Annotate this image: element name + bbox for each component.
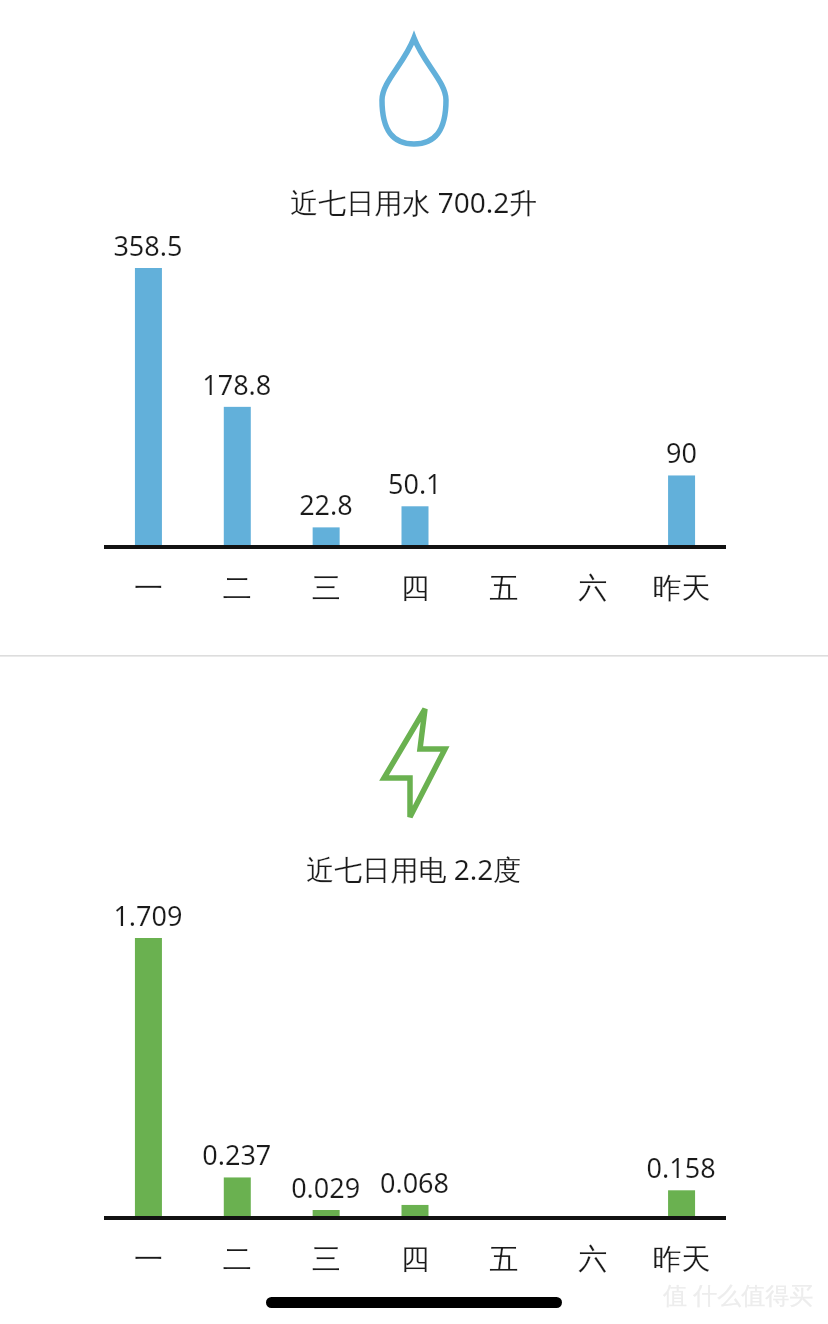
button[interactable]: 近七日用水 700.2升 <box>0 0 828 657</box>
button[interactable]: 近七日用电 2.2度 <box>0 657 828 1324</box>
